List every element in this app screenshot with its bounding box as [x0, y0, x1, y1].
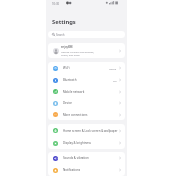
staticText: Home screen & Lock screen & wallpaper [63, 129, 118, 133]
staticText: Bluetooth [63, 78, 113, 82]
staticText: 10:30 [52, 2, 60, 6]
button[interactable]: enjoy888 [48, 43, 125, 58]
staticText: On [113, 79, 117, 82]
button[interactable]: Bluetooth [48, 74, 125, 86]
button[interactable]: Search [48, 31, 125, 38]
staticText: Search [56, 33, 65, 37]
button[interactable]: More connections [48, 109, 125, 120]
staticText: More connections [63, 113, 118, 117]
staticText: Settings [52, 18, 76, 26]
button[interactable]: Device [48, 97, 125, 109]
button[interactable]: Display & brightness [48, 137, 125, 149]
staticText: Cloud, and more [61, 53, 80, 56]
button[interactable]: Mobile network [48, 86, 125, 97]
staticText: Home [109, 67, 117, 70]
staticText: Sounds & vibration [63, 156, 118, 160]
button[interactable]: Notifications [48, 164, 125, 176]
staticText: HeyTap Account and services, [61, 50, 95, 53]
staticText: Display & brightness [63, 141, 118, 145]
staticText: Device [63, 101, 118, 105]
button[interactable]: Home screen & Lock screen & wallpaper [48, 124, 125, 137]
button[interactable]: Wi-Fi [48, 62, 125, 74]
button[interactable]: Sounds & vibration [48, 152, 125, 164]
staticText: Mobile network [63, 90, 118, 94]
staticText: Wi-Fi [63, 66, 109, 70]
staticText: Notifications [63, 168, 118, 172]
staticText: enjoy888 [61, 45, 73, 49]
